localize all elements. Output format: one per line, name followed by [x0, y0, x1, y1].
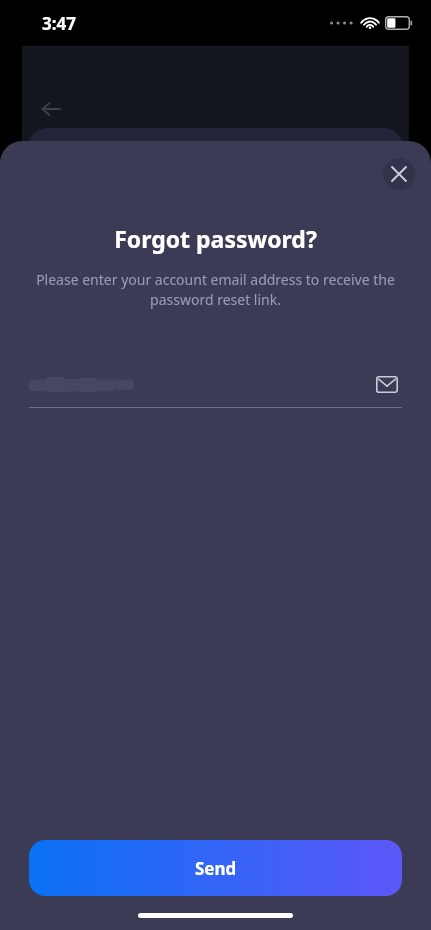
button[interactable]: Close — [383, 158, 415, 190]
button[interactable]: Email — [372, 369, 402, 399]
staticText: Please enter your account email address … — [18, 270, 413, 309]
button[interactable]: Email — [29, 365, 402, 407]
staticText: Forgot password? — [114, 223, 317, 254]
staticText: Send — [195, 857, 237, 880]
button[interactable]: Back — [32, 90, 70, 128]
button[interactable]: Send — [29, 840, 402, 896]
staticText: 3:47 — [42, 12, 76, 35]
